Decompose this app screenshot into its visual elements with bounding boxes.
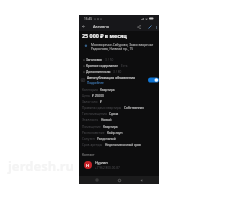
staticText: Есть xyxy=(121,64,128,68)
staticText: Активно xyxy=(93,24,110,29)
staticText: Москворечье-Сабурово, Замоскворечье xyxy=(91,43,155,47)
staticText: Подробнее xyxy=(87,81,104,85)
staticText: 16:45 xyxy=(84,17,93,21)
button[interactable]: Автопубликация объявления xyxy=(81,74,159,85)
staticText: Автопубликация объявления xyxy=(87,75,136,80)
staticText: Нурлан xyxy=(95,160,108,165)
staticText: Сдача xyxy=(109,112,119,116)
staticText: Неделя месячный срок xyxy=(105,143,142,147)
staticText: 3 / 80 xyxy=(113,70,122,74)
button[interactable]: Ещё xyxy=(154,25,158,29)
staticText: Квартира xyxy=(100,88,115,92)
button[interactable]: Поделиться xyxy=(135,23,142,30)
staticText: Цена xyxy=(82,94,90,98)
staticText: Квартира xyxy=(103,125,118,129)
staticText: Тип помещения xyxy=(82,112,107,116)
staticText: Новый xyxy=(101,118,112,122)
staticText: Заголовок xyxy=(86,58,103,62)
staticText: +7 962 800-00-87 xyxy=(95,166,120,170)
staticText: jerdesh.ru xyxy=(8,157,75,175)
staticText: Залог или xyxy=(82,100,98,104)
staticText: Дополнительно xyxy=(86,70,111,74)
staticText: Категория xyxy=(82,88,98,92)
staticText: Правила сдачи квартиры xyxy=(82,106,122,110)
button[interactable]: Недавние приложения xyxy=(93,176,101,184)
staticText: Помещение xyxy=(82,125,101,129)
button[interactable]: Редактировать xyxy=(146,23,153,30)
staticText: Кайр-таун xyxy=(107,131,123,135)
staticText: Краткое содержание xyxy=(86,64,119,68)
button[interactable]: Домой xyxy=(115,176,123,184)
staticText: Расположение xyxy=(82,131,105,135)
staticText: Раздельный xyxy=(97,137,116,141)
staticText: Срок аренды xyxy=(82,143,103,147)
staticText: Санузел xyxy=(82,137,95,141)
staticText: ₽ xyxy=(100,100,102,104)
staticText: Собственник xyxy=(124,106,145,110)
staticText: Контакт xyxy=(82,152,95,156)
staticText: Этажность xyxy=(82,118,99,122)
staticText: ₽ 25000 xyxy=(92,94,104,98)
button[interactable]: Автопубликация объявления xyxy=(148,77,159,83)
staticText: 25 000 ₽ в месяц xyxy=(82,32,127,39)
button[interactable]: Назад xyxy=(137,176,145,184)
button[interactable]: Н xyxy=(84,160,156,170)
staticText: 3 / 50 xyxy=(105,58,114,62)
staticText: Н xyxy=(86,163,90,168)
button[interactable]: Назад xyxy=(80,23,87,30)
staticText: Радионова, Нижний пр., 15 xyxy=(91,47,134,51)
